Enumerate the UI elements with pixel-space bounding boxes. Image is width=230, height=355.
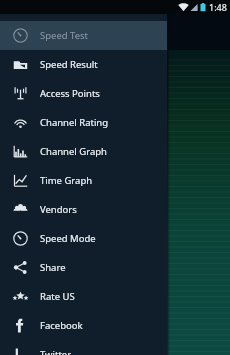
- button[interactable]: Share: [0, 253, 167, 282]
- staticText: Vendors: [40, 203, 77, 216]
- staticText: Access Points: [40, 87, 100, 100]
- button[interactable]: Speed Result: [0, 50, 167, 79]
- button[interactable]: Twitter: [0, 340, 167, 355]
- button[interactable]: Vendors: [0, 195, 167, 224]
- button[interactable]: Access Points: [0, 79, 167, 108]
- staticText: Twitter: [40, 348, 72, 355]
- button[interactable]: Facebook: [0, 311, 167, 340]
- staticText: Rate US: [40, 290, 75, 303]
- staticText: Channel Rating: [40, 116, 109, 129]
- staticText: 1:48: [209, 1, 227, 13]
- staticText: Speed Test: [40, 29, 89, 42]
- staticText: Channel Graph: [40, 145, 107, 158]
- staticText: Speed Result: [40, 58, 98, 71]
- staticText: Facebook: [40, 319, 83, 332]
- button[interactable]: Channel Rating: [0, 108, 167, 137]
- button[interactable]: Channel Graph: [0, 137, 167, 166]
- staticText: Time Graph: [40, 174, 93, 187]
- button[interactable]: Speed Mode: [0, 224, 167, 253]
- staticText: Share: [40, 261, 66, 274]
- button[interactable]: Rate US: [0, 282, 167, 311]
- button[interactable]: Speed Test: [0, 21, 167, 50]
- staticText: Speed Mode: [40, 232, 96, 245]
- button[interactable]: Time Graph: [0, 166, 167, 195]
